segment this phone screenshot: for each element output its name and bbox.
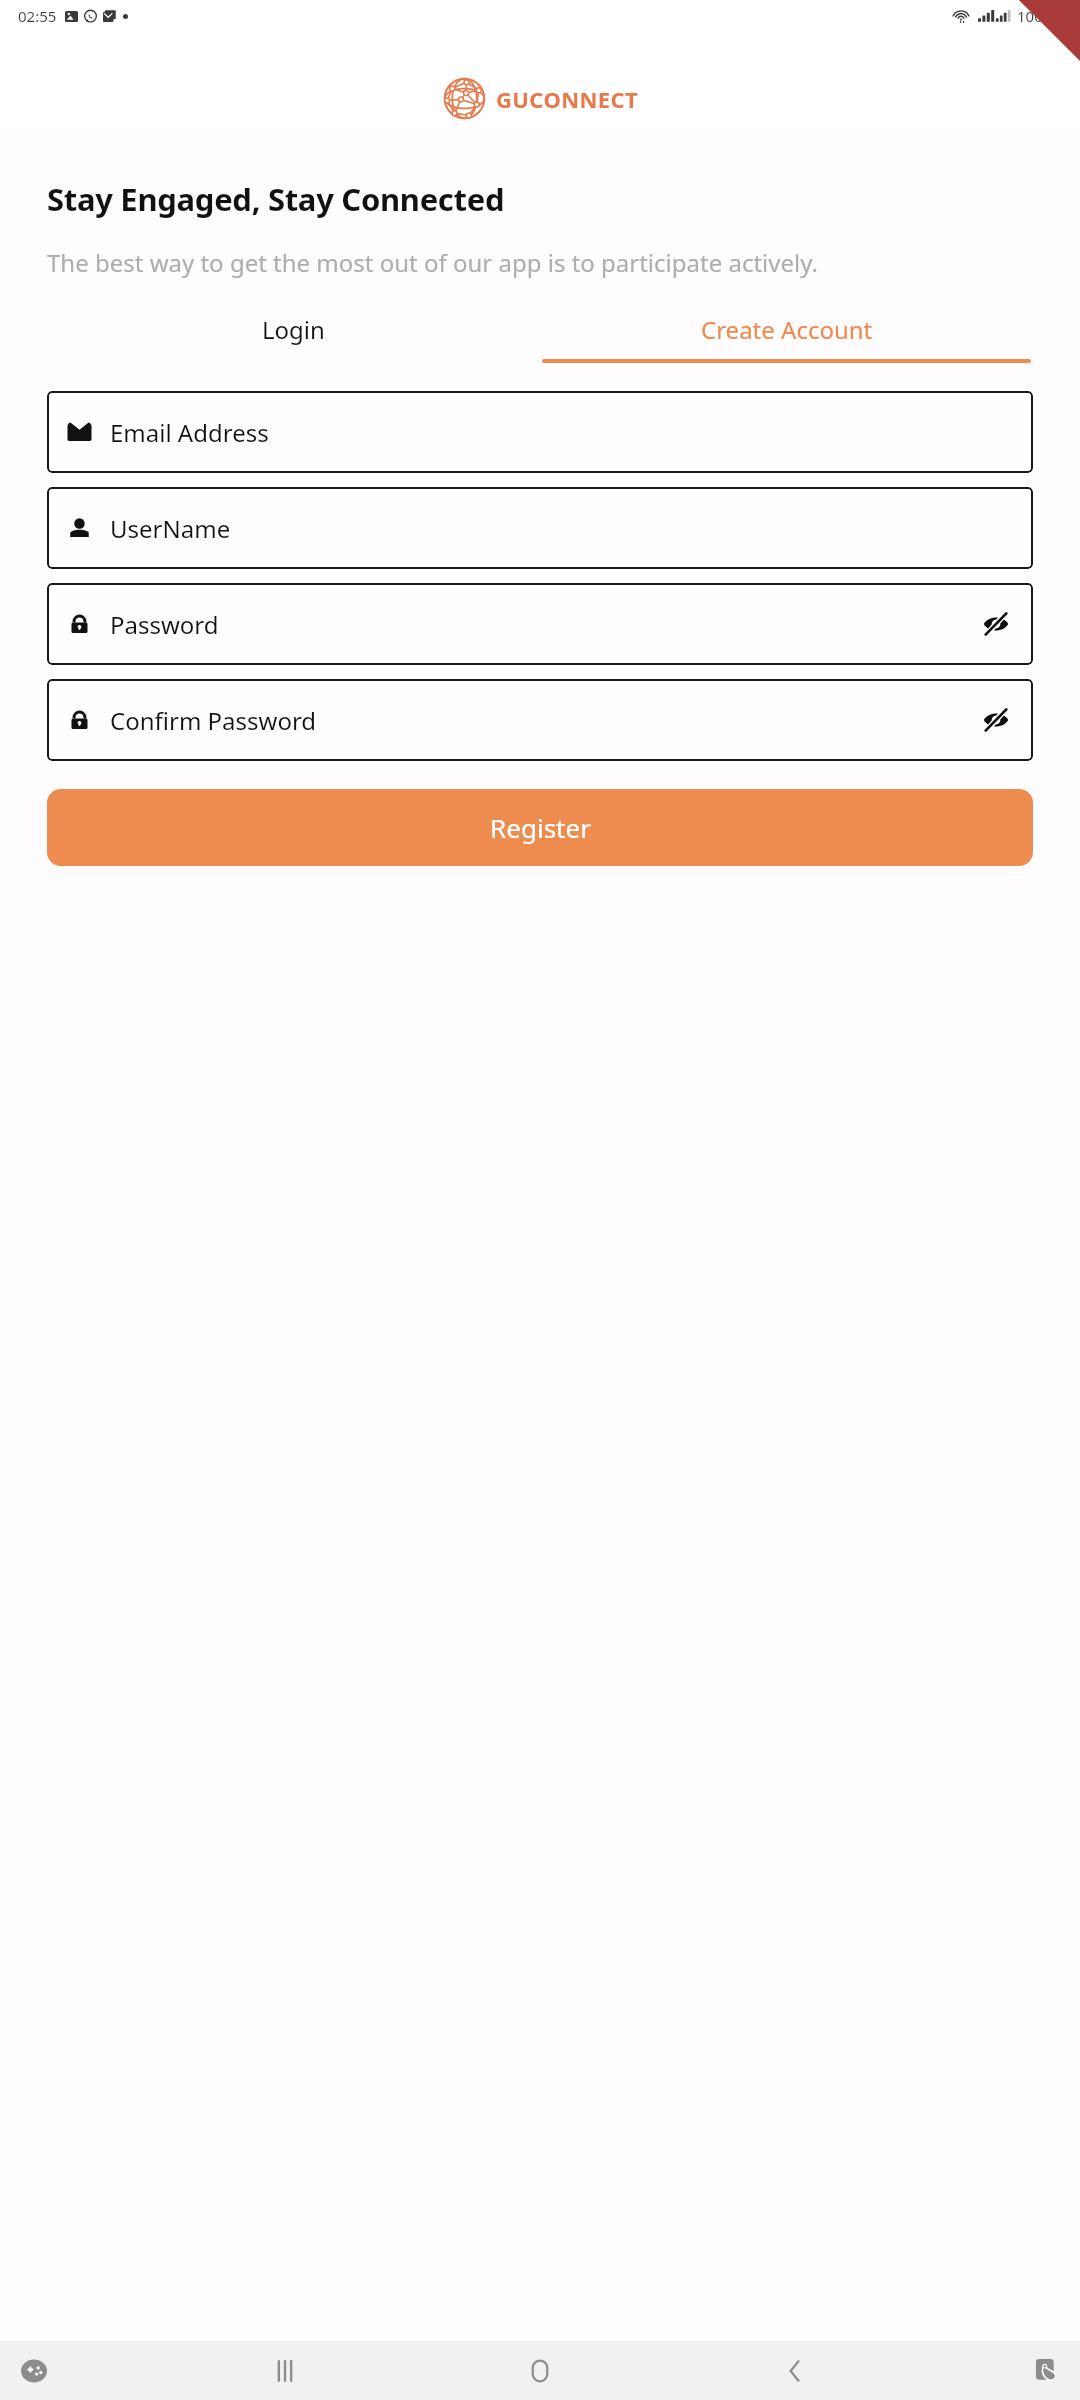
staticText: Email Address	[110, 416, 269, 449]
staticText: 100%	[1017, 6, 1056, 26]
button[interactable]: Recent apps	[259, 2345, 311, 2397]
button[interactable]: Touch assistant	[1024, 2349, 1068, 2393]
staticText: Login	[262, 313, 325, 346]
button[interactable]: Email Address	[47, 391, 1033, 473]
staticText: Password	[110, 608, 219, 641]
staticText: Confirm Password	[110, 704, 317, 737]
button[interactable]: Game launcher	[12, 2349, 56, 2393]
button[interactable]: Create Account	[540, 313, 1033, 363]
button[interactable]: Back	[769, 2345, 821, 2397]
button[interactable]: Show password	[979, 607, 1013, 641]
staticText: The best way to get the most out of our …	[47, 246, 818, 279]
button[interactable]: Show password	[979, 703, 1013, 737]
staticText: Stay Engaged, Stay Connected	[47, 178, 505, 220]
button[interactable]: UserName	[47, 487, 1033, 569]
staticText: 02:55	[18, 6, 57, 26]
staticText: Register	[490, 810, 591, 845]
button[interactable]: Login	[47, 313, 540, 346]
button[interactable]: Register	[47, 789, 1033, 866]
button[interactable]: Confirm Password	[47, 679, 1033, 761]
button[interactable]: Home	[514, 2345, 566, 2397]
staticText: Create Account	[701, 313, 873, 346]
button[interactable]: Password	[47, 583, 1033, 665]
staticText: UserName	[110, 512, 231, 545]
staticText: GUCONNECT	[496, 84, 639, 114]
